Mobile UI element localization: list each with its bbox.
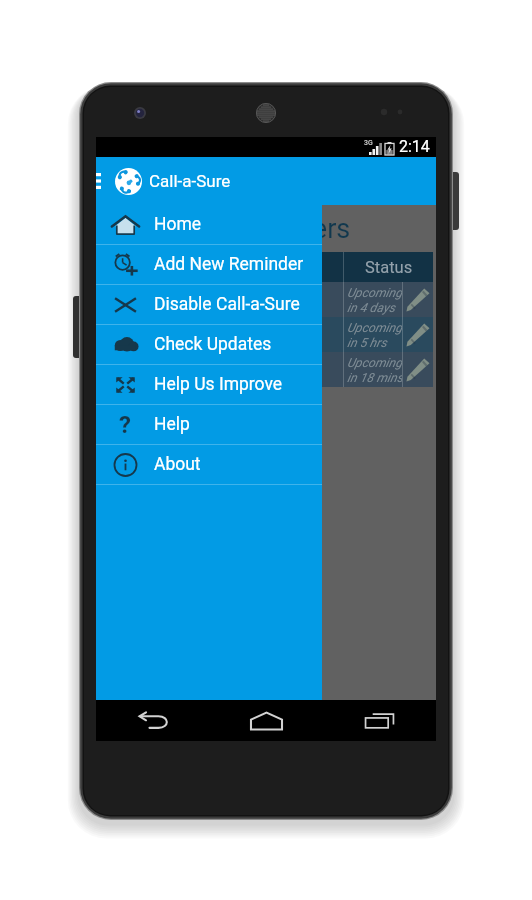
button[interactable]: Home bbox=[210, 700, 323, 741]
staticText: Call-a-Sure bbox=[149, 171, 231, 191]
staticText: Status bbox=[365, 258, 413, 277]
staticText: Call mom bbox=[108, 292, 160, 307]
staticText: Help bbox=[154, 414, 190, 435]
button[interactable]: About bbox=[96, 445, 322, 484]
button[interactable]: Home bbox=[96, 205, 322, 244]
button[interactable]: Disable Call-a-Sure bbox=[96, 285, 322, 324]
staticText: Name bbox=[200, 257, 246, 277]
staticText: Your Reminders bbox=[160, 213, 351, 245]
button[interactable]: Meeting bbox=[102, 352, 433, 387]
staticText: ? bbox=[119, 411, 131, 439]
button[interactable]: Doctor appointment... bbox=[102, 317, 433, 352]
staticText: About bbox=[154, 454, 201, 475]
staticText: Upcoming in 18 mins bbox=[347, 355, 402, 385]
other: Open navigation menu bbox=[96, 157, 101, 205]
button[interactable]: Back bbox=[96, 700, 210, 741]
staticText: Doctor appointment... bbox=[108, 327, 226, 342]
button[interactable]: Add New Reminder bbox=[96, 245, 322, 284]
button[interactable]: Help Us Improve bbox=[96, 365, 322, 404]
staticText: Disable Call-a-Sure bbox=[154, 294, 300, 315]
staticText: 3G bbox=[364, 139, 373, 147]
staticText: 2:14 bbox=[399, 137, 430, 156]
staticText: Upcoming in 5 hrs bbox=[347, 320, 402, 350]
staticText: Add New Reminder bbox=[154, 254, 304, 275]
staticText: Meeting bbox=[108, 362, 152, 377]
button[interactable]: ? bbox=[96, 405, 322, 444]
button[interactable]: Call mom bbox=[102, 282, 433, 317]
staticText: Upcoming in 4 days bbox=[347, 285, 402, 315]
staticText: Help Us Improve bbox=[154, 374, 283, 395]
button[interactable]: Recent apps bbox=[323, 700, 436, 741]
staticText: Home bbox=[154, 214, 202, 235]
staticText: Check Updates bbox=[154, 334, 272, 355]
button[interactable]: Open navigation menu bbox=[96, 157, 436, 205]
button[interactable]: Check Updates bbox=[96, 325, 322, 364]
